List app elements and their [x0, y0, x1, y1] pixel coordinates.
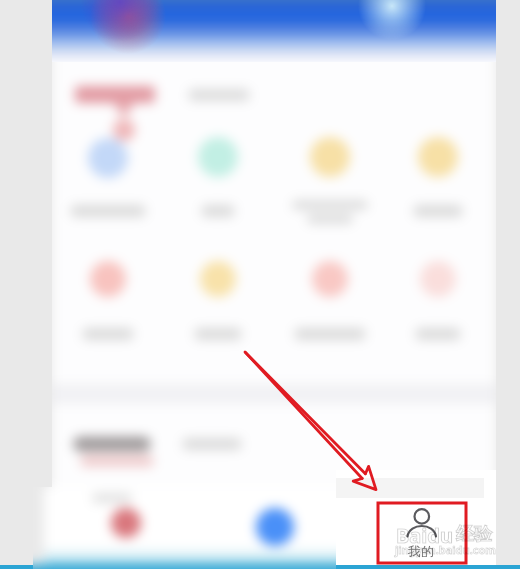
- staticText: jingyan.baidu.com: [395, 542, 497, 557]
- staticText: Baidu: [396, 522, 453, 549]
- staticText: 经验: [456, 523, 492, 546]
- staticText: 我的: [408, 543, 434, 559]
- button[interactable]: 我的: [378, 503, 466, 563]
